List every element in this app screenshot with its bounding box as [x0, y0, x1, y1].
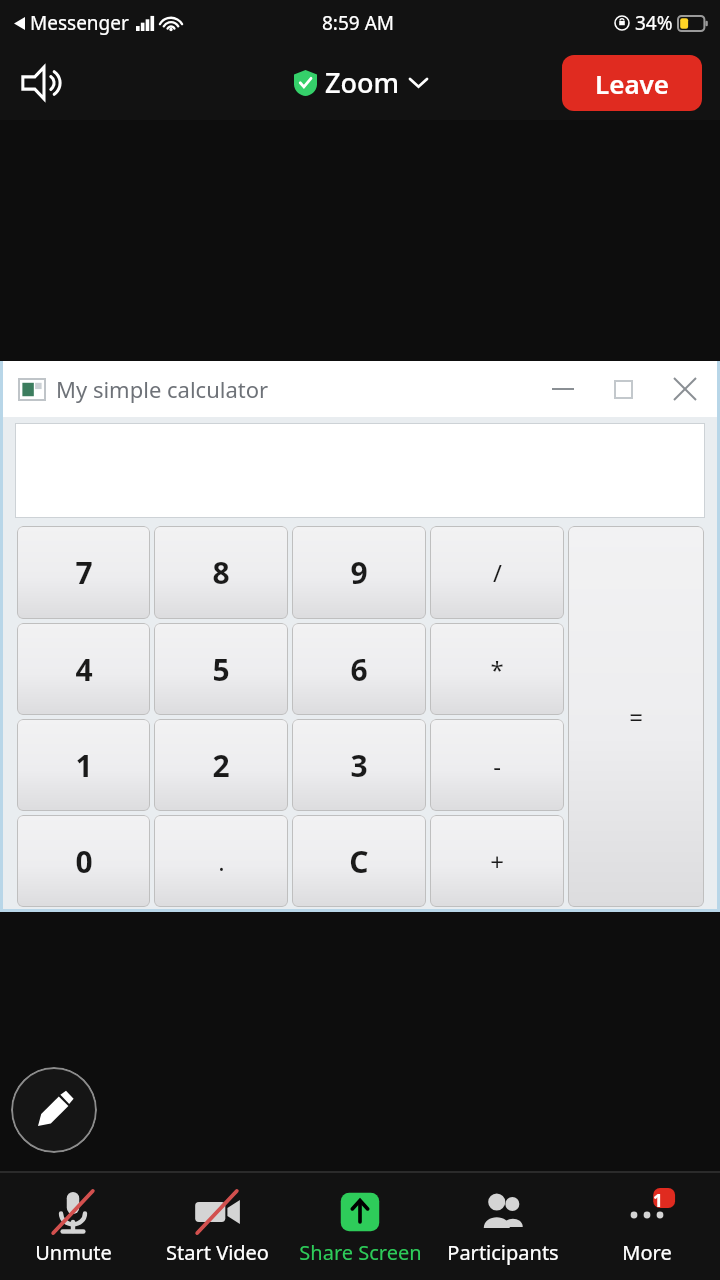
staticText: Unmute: [35, 1239, 112, 1266]
button[interactable]: 7: [17, 526, 150, 619]
button[interactable]: Minimize: [533, 363, 593, 415]
staticText: 5: [212, 649, 230, 690]
button[interactable]: 4: [17, 623, 150, 715]
button[interactable]: Share Screen: [290, 1172, 430, 1280]
button[interactable]: -: [430, 719, 564, 811]
staticText: Share Screen: [299, 1239, 422, 1266]
staticText: 8:59 AM: [322, 10, 395, 36]
button[interactable]: 6: [292, 623, 426, 715]
button[interactable]: 2: [154, 719, 288, 811]
staticText: 1: [75, 745, 93, 786]
button[interactable]: Close: [653, 363, 717, 415]
staticText: Participants: [447, 1239, 559, 1266]
staticText: 1: [653, 1189, 663, 1212]
staticText: Zoom: [325, 64, 400, 101]
button[interactable]: .: [154, 815, 288, 907]
button[interactable]: Participants: [433, 1172, 573, 1280]
staticText: Messenger: [30, 10, 129, 36]
button[interactable]: C: [292, 815, 426, 907]
staticText: Start Video: [166, 1239, 269, 1266]
staticText: 0: [75, 841, 93, 882]
button[interactable]: 3: [292, 719, 426, 811]
button[interactable]: 1: [17, 719, 150, 811]
button[interactable]: 0: [17, 815, 150, 907]
staticText: /: [493, 556, 502, 589]
button[interactable]: Annotate: [11, 1067, 97, 1153]
staticText: 7: [75, 552, 93, 593]
button[interactable]: +: [430, 815, 564, 907]
staticText: 6: [350, 649, 368, 690]
button[interactable]: 8: [154, 526, 288, 619]
staticText: 4: [75, 649, 93, 690]
button[interactable]: Zoom: [288, 60, 433, 105]
button[interactable]: Start Video: [147, 1172, 287, 1280]
staticText: 3: [350, 745, 368, 786]
button[interactable]: Speaker: [14, 55, 74, 111]
button[interactable]: =: [568, 526, 704, 907]
button[interactable]: Unmute: [3, 1172, 143, 1280]
staticText: 9: [350, 552, 368, 593]
staticText: Leave: [595, 66, 670, 101]
button[interactable]: Leave: [562, 55, 702, 111]
staticText: My simple calculator: [56, 374, 269, 404]
button[interactable]: /: [430, 526, 564, 619]
staticText: *: [490, 653, 504, 686]
staticText: 34%: [635, 10, 673, 36]
button[interactable]: *: [430, 623, 564, 715]
staticText: More: [622, 1239, 672, 1266]
staticText: =: [629, 700, 643, 733]
button[interactable]: 1: [577, 1172, 717, 1280]
button[interactable]: Maximize: [593, 363, 653, 415]
button[interactable]: 5: [154, 623, 288, 715]
button[interactable]: 9: [292, 526, 426, 619]
staticText: 2: [212, 745, 230, 786]
staticText: +: [490, 845, 504, 878]
staticText: C: [349, 841, 369, 882]
staticText: -: [493, 749, 501, 782]
staticText: 8: [212, 552, 230, 593]
staticText: .: [218, 845, 225, 878]
